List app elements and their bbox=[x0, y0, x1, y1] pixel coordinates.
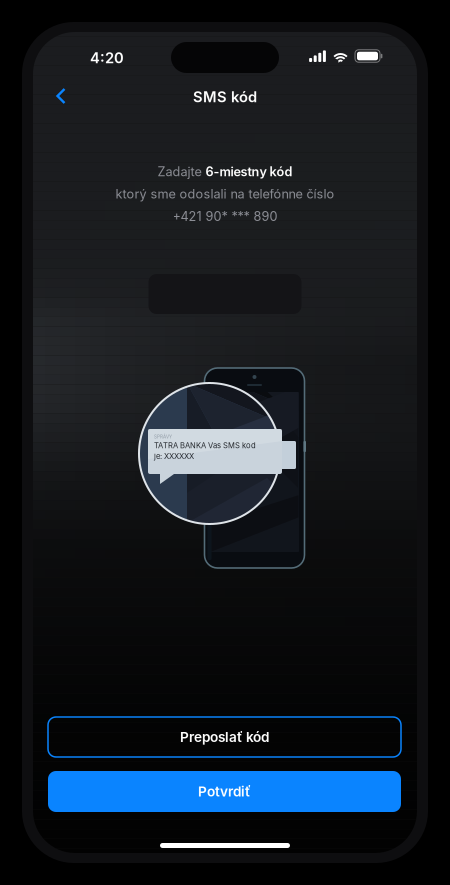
staticText: Zadajte bbox=[157, 164, 201, 179]
staticText: SMS kód bbox=[193, 88, 257, 106]
button[interactable]: Potvrdiť bbox=[48, 771, 401, 812]
staticText: 4:20 bbox=[90, 49, 124, 67]
staticText: SPRÁVY bbox=[154, 434, 172, 439]
staticText: ktorý sme odoslali na telefónne číslo bbox=[115, 186, 334, 202]
staticText: Preposlať kód bbox=[180, 729, 269, 745]
staticText: je: XXXXXX bbox=[154, 452, 194, 461]
button[interactable]: Back bbox=[42, 76, 80, 116]
staticText: Potvrdiť bbox=[198, 783, 251, 800]
staticText: TATRA BANKA Vas SMS kod bbox=[154, 441, 256, 450]
staticText: +421 90* *** 890 bbox=[172, 209, 277, 224]
staticText: 6-miestny kód bbox=[205, 164, 292, 179]
button[interactable]: Preposlať kód bbox=[48, 717, 401, 757]
